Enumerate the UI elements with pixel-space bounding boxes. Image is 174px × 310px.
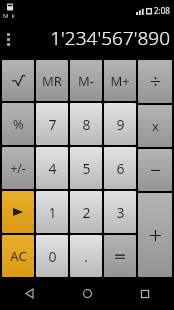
button[interactable]: 9 [104,103,136,145]
button[interactable]: 5 [70,147,102,189]
staticText: 9 [116,115,125,134]
button[interactable]: 0 [36,235,68,277]
button[interactable]: Square root [2,60,34,101]
button[interactable]: 6 [104,147,136,189]
button[interactable]: . [70,235,102,277]
button[interactable]: MR [36,60,68,101]
button[interactable]: 7 [36,103,68,145]
staticText: % [13,115,24,133]
staticText: . [84,247,88,266]
staticText: 2:08 [154,5,170,16]
button[interactable]: +/- [2,147,34,189]
button[interactable]: More options [0,26,16,52]
staticText: MR [42,72,62,90]
button[interactable]: Back [0,277,58,310]
staticText: 5 [82,159,91,178]
button[interactable]: M- [70,60,102,101]
button[interactable]: Plus [138,193,172,277]
staticText: 7 [48,115,57,134]
button[interactable]: AC [2,235,34,277]
button[interactable]: Evaluate [2,191,34,233]
staticText: M- [78,72,94,90]
button[interactable]: Home [58,277,116,310]
staticText: 2 [82,203,91,222]
button[interactable]: M+ [104,60,136,101]
staticText: 1 [48,203,57,222]
staticText: 0 [48,247,57,266]
staticText: 6 [116,159,125,178]
button[interactable]: 4 [36,147,68,189]
button[interactable]: Recent apps [116,277,174,310]
button[interactable]: 8 [70,103,102,145]
staticText: +/- [10,160,26,176]
button[interactable]: x [138,105,172,147]
button[interactable]: 3 [104,191,136,233]
staticText: AC [10,247,27,265]
staticText: 1'234'567'890 [50,25,170,51]
staticText: x [152,117,159,135]
staticText: M k [3,12,15,20]
button[interactable]: Divide [138,60,172,103]
button[interactable]: 1 [36,191,68,233]
staticText: 3 [116,203,125,222]
staticText: M+ [110,72,130,90]
button[interactable]: % [2,103,34,145]
button[interactable]: Minus [138,149,172,191]
button[interactable]: Equals [104,235,136,277]
button[interactable]: 2 [70,191,102,233]
staticText: 8 [82,115,91,134]
staticText: 4 [48,159,57,178]
